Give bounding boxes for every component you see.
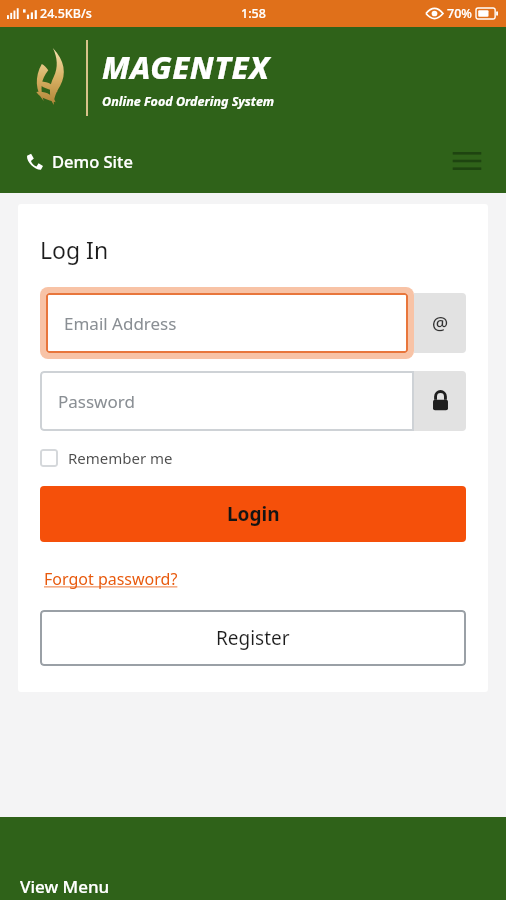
staticText: View Menu — [20, 875, 110, 898]
staticText: Log In — [40, 234, 109, 265]
staticText: Login — [227, 501, 280, 527]
button[interactable]: Menu — [450, 144, 484, 178]
other: Show password — [414, 371, 466, 431]
staticText: 1:58 — [241, 5, 266, 22]
staticText: Demo Site — [52, 150, 133, 172]
staticText: Password — [58, 390, 135, 413]
button[interactable]: Login — [40, 486, 466, 542]
button[interactable]: Email Address — [46, 293, 408, 353]
staticText: Online Food Ordering System — [102, 93, 275, 110]
staticText: Register — [216, 625, 290, 651]
button[interactable]: Forgot password? — [44, 568, 178, 590]
staticText: 24.5KB/s — [40, 5, 92, 22]
staticText: MAGENTEX — [102, 46, 270, 88]
staticText: @ — [432, 311, 449, 336]
staticText: Remember me — [68, 448, 173, 468]
button[interactable]: Remember me — [40, 448, 173, 468]
other: Email — [414, 293, 466, 353]
button[interactable]: Password — [40, 371, 414, 431]
staticText: 70% — [447, 5, 472, 22]
button[interactable]: Register — [40, 610, 466, 666]
staticText: Forgot password? — [44, 568, 178, 590]
button[interactable]: Demo Site — [26, 150, 133, 172]
staticText: Email Address — [64, 312, 177, 335]
button[interactable]: View Menu — [20, 875, 110, 898]
